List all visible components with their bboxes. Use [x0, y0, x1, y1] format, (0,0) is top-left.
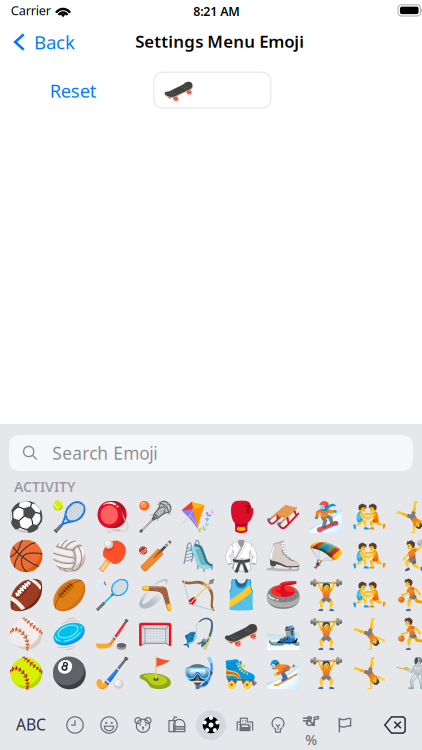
button[interactable]: 🛼: [220, 656, 262, 689]
button[interactable]: Delete: [375, 705, 415, 745]
button[interactable]: ⚾️: [6, 617, 48, 650]
staticText: 🥅: [137, 616, 174, 651]
button[interactable]: ⛸️: [262, 539, 305, 572]
button[interactable]: 🛷: [262, 500, 305, 533]
staticText: 🏀: [8, 538, 45, 573]
staticText: ABC: [16, 714, 46, 735]
button[interactable]: 🤿: [177, 656, 220, 689]
staticText: 🥍: [137, 499, 174, 534]
button[interactable]: 🪁: [177, 500, 220, 533]
button[interactable]: 🏒: [91, 617, 134, 650]
button[interactable]: Objects: [261, 705, 295, 745]
button[interactable]: Symbols: [294, 705, 328, 745]
button[interactable]: 🏋️: [305, 578, 348, 611]
button[interactable]: 🥊: [220, 500, 262, 533]
staticText: Search Emoji: [52, 441, 157, 465]
button[interactable]: 🎣: [177, 617, 220, 650]
button[interactable]: 🎿: [262, 617, 305, 650]
button[interactable]: ⛹️: [391, 578, 422, 611]
button[interactable]: Animals and Nature: [126, 705, 160, 745]
button[interactable]: 🛹: [154, 72, 271, 108]
button[interactable]: 🥏: [48, 617, 91, 650]
button[interactable]: 🪀: [91, 500, 134, 533]
staticText: 🏐: [51, 538, 88, 573]
staticText: ⛷️: [265, 655, 302, 690]
button[interactable]: 🏋️: [305, 656, 348, 689]
button[interactable]: 🏑: [91, 656, 134, 689]
staticText: 🏋️: [308, 577, 345, 612]
staticText: 🛹: [163, 75, 195, 105]
button[interactable]: 🏂: [305, 500, 348, 533]
staticText: Settings Menu Emoji: [135, 30, 304, 53]
staticText: 8:21 AM: [193, 3, 240, 20]
staticText: 🪂: [308, 538, 345, 573]
staticText: ⚾️: [8, 616, 45, 651]
staticText: Reset: [50, 78, 97, 103]
staticText: 🏓: [94, 538, 131, 573]
staticText: 🤾: [394, 538, 422, 573]
button[interactable]: 🥋: [220, 539, 262, 572]
button[interactable]: 🏏: [134, 539, 177, 572]
button[interactable]: 🤼: [348, 500, 391, 533]
staticText: 🤼: [351, 577, 388, 612]
button[interactable]: 🏹: [177, 578, 220, 611]
button[interactable]: 🤼: [348, 578, 391, 611]
staticText: 🏸: [94, 577, 131, 612]
button[interactable]: 🏈: [6, 578, 48, 611]
staticText: 🤸: [394, 499, 422, 534]
staticText: 🤼: [351, 499, 388, 534]
staticText: 🛷: [265, 499, 302, 534]
button[interactable]: 🏐: [48, 539, 91, 572]
button[interactable]: 🤸: [348, 656, 391, 689]
button[interactable]: 🤾: [391, 539, 422, 572]
button[interactable]: 🥍: [134, 500, 177, 533]
button[interactable]: 🛹: [220, 617, 262, 650]
staticText: 🎿: [265, 616, 302, 651]
button[interactable]: 🎽: [220, 578, 262, 611]
staticText: ⛳️: [137, 655, 174, 690]
staticText: ACTIVITY: [14, 477, 75, 496]
staticText: 🪀: [94, 499, 131, 534]
staticText: 🏒: [94, 616, 131, 651]
staticText: 🎽: [222, 577, 259, 612]
button[interactable]: 🪂: [305, 539, 348, 572]
button[interactable]: 🏉: [48, 578, 91, 611]
button[interactable]: ABC: [4, 704, 58, 744]
button[interactable]: 🎾: [48, 500, 91, 533]
button[interactable]: Travel and Places: [228, 705, 262, 745]
button[interactable]: 🛝: [177, 539, 220, 572]
button[interactable]: 🥌: [262, 578, 305, 611]
button[interactable]: 🪃: [134, 578, 177, 611]
button[interactable]: Reset: [39, 74, 107, 108]
staticText: Carrier: [11, 2, 51, 19]
staticText: 🤸: [351, 655, 388, 690]
button[interactable]: 🏸: [91, 578, 134, 611]
staticText: 🤺: [394, 655, 422, 690]
button[interactable]: Recently Used: [58, 705, 92, 745]
button[interactable]: ⛳️: [134, 656, 177, 689]
button[interactable]: 🤸: [391, 500, 422, 533]
staticText: 🏋️: [308, 616, 345, 651]
button[interactable]: Activity: [194, 705, 228, 745]
button[interactable]: 🏋️: [305, 617, 348, 650]
button[interactable]: 🥎: [6, 656, 48, 689]
staticText: 🏋️: [308, 655, 345, 690]
button[interactable]: Back: [0, 24, 88, 60]
button[interactable]: ⛹️: [391, 617, 422, 650]
button[interactable]: Flags: [328, 705, 362, 745]
staticText: 🛼: [222, 655, 259, 690]
button[interactable]: 🏀: [6, 539, 48, 572]
button[interactable]: 🤼: [348, 539, 391, 572]
button[interactable]: Smileys and People: [92, 705, 126, 745]
staticText: 🏈: [8, 577, 45, 612]
button[interactable]: Food and Drink: [160, 705, 194, 745]
staticText: 🎾: [51, 499, 88, 534]
button[interactable]: ⚽️: [6, 500, 48, 533]
button[interactable]: 🥅: [134, 617, 177, 650]
button[interactable]: 🤸: [348, 617, 391, 650]
button[interactable]: ⛷️: [262, 656, 305, 689]
staticText: 🤿: [180, 655, 217, 690]
button[interactable]: 🎱: [48, 656, 91, 689]
button[interactable]: 🏓: [91, 539, 134, 572]
button[interactable]: 🤺: [391, 656, 422, 689]
